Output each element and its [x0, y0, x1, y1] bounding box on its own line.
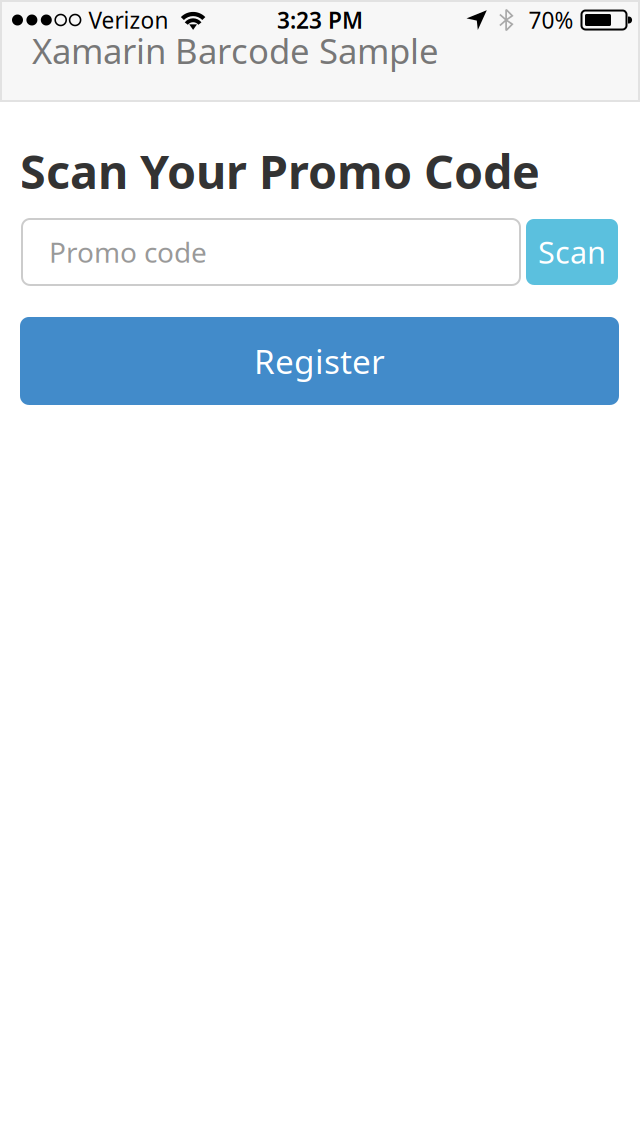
button[interactable]: Scan — [526, 219, 618, 285]
staticText: Verizon — [89, 5, 169, 35]
staticText: Scan — [538, 232, 606, 272]
staticText: Register — [254, 339, 385, 383]
staticText: Scan Your Promo Code — [20, 140, 540, 202]
staticText: 3:23 PM — [277, 5, 363, 35]
staticText: 70% — [528, 5, 573, 35]
button[interactable]: Promo code — [22, 219, 520, 285]
staticText: Xamarin Barcode Sample — [32, 27, 439, 73]
staticText: Promo code — [49, 233, 207, 271]
button[interactable]: Register — [20, 317, 619, 405]
